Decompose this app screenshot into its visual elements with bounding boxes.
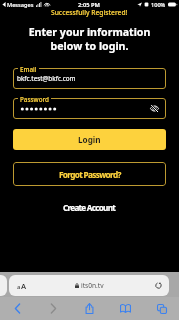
staticText: Forgot Password? (59, 169, 121, 180)
staticText: A (21, 281, 27, 291)
button[interactable]: Login (13, 129, 166, 150)
staticText: 2:05 PM (78, 1, 101, 9)
button[interactable]: Forgot Password? (13, 162, 166, 186)
staticText: its0n.tv (81, 281, 104, 290)
staticText: Email (20, 65, 37, 72)
button[interactable]: Share (72, 297, 107, 320)
staticText: Successfully Registered! (51, 8, 128, 17)
button[interactable]: Text size (9, 275, 169, 296)
button[interactable]: Back (0, 297, 35, 320)
staticText: a (17, 283, 21, 291)
button[interactable]: Forward (36, 297, 71, 320)
staticText: Messages (7, 1, 34, 9)
button[interactable]: Reload (9, 275, 163, 296)
staticText: Enter your information below to login. (0, 25, 179, 54)
other: Text size (17, 275, 169, 296)
staticText: Create Account (63, 202, 116, 213)
staticText: 100% (151, 1, 166, 9)
button[interactable]: Bookmarks (108, 297, 143, 320)
button[interactable]: Tabs (144, 297, 179, 320)
staticText: bkfc.test@bkfc.com (17, 74, 76, 83)
button[interactable]: Create Account (0, 199, 179, 215)
staticText: Password (20, 95, 49, 102)
staticText: Login (78, 134, 101, 145)
button[interactable]: Hide password (150, 104, 159, 113)
